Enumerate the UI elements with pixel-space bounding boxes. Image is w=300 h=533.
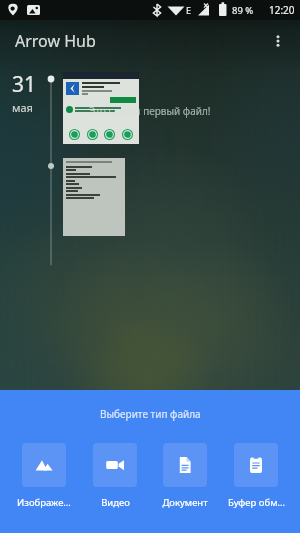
staticText: Arrow Hub xyxy=(15,30,96,52)
staticText: 31 xyxy=(12,70,37,99)
staticText: 89 % xyxy=(232,4,254,17)
button[interactable] xyxy=(63,158,125,236)
staticText: Буфер обм… xyxy=(228,496,285,509)
staticText: Выберите тип файла xyxy=(100,407,201,421)
button[interactable]: Video xyxy=(83,443,147,509)
staticText: E xyxy=(186,4,192,16)
staticText: Это самый первый файл! xyxy=(89,104,211,118)
button[interactable]: Image xyxy=(12,443,76,509)
staticText: Документ xyxy=(162,496,208,509)
button[interactable]: Document xyxy=(153,443,217,509)
staticText: Изображе… xyxy=(17,496,71,509)
staticText: 12:20 xyxy=(269,3,295,17)
staticText: Видео xyxy=(101,496,130,509)
button[interactable] xyxy=(63,72,139,144)
staticText: мая xyxy=(12,100,33,115)
button[interactable]: More options xyxy=(260,23,296,59)
button[interactable]: Clipboard xyxy=(224,443,288,509)
